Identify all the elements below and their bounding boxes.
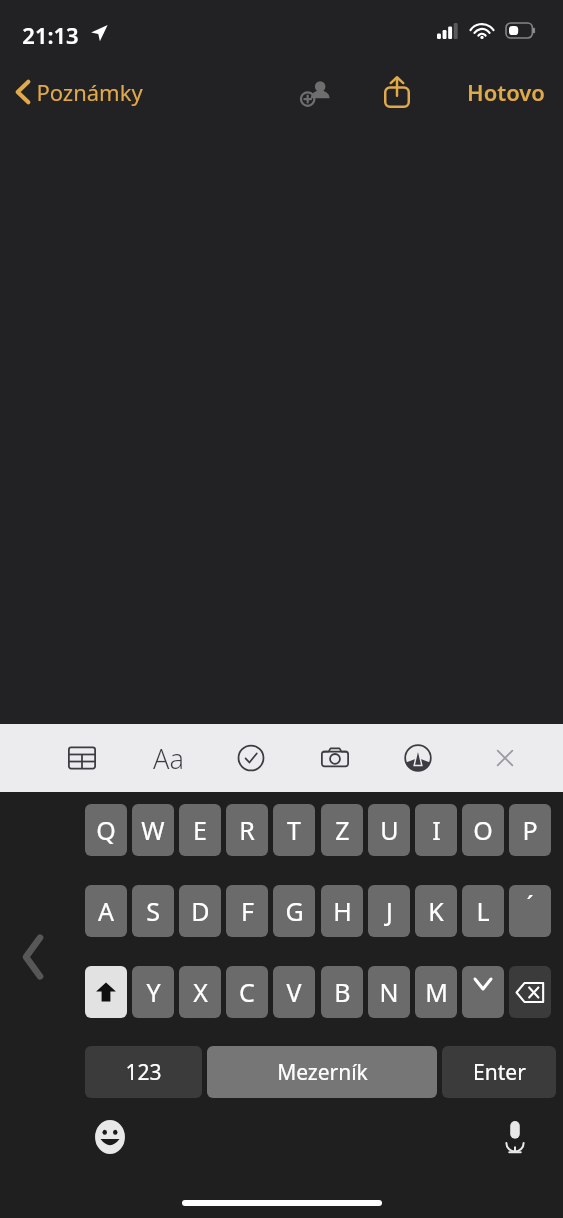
staticText: O (473, 813, 493, 847)
staticText: F (241, 894, 254, 928)
staticText: M (425, 975, 448, 1009)
staticText: K (428, 894, 444, 928)
staticText: I (432, 813, 441, 847)
staticText: D (191, 894, 210, 928)
staticText: W (141, 813, 165, 847)
button[interactable]: Checklist (229, 736, 273, 780)
button[interactable]: U (368, 804, 410, 856)
staticText: Poznámky (36, 77, 143, 107)
button[interactable]: E (179, 804, 221, 856)
button[interactable]: Share (378, 70, 416, 114)
button[interactable]: M (415, 966, 457, 1018)
button[interactable]: T (273, 804, 315, 856)
button[interactable]: D (179, 885, 221, 937)
staticText: G (285, 894, 304, 928)
button[interactable]: A (85, 885, 127, 937)
button[interactable]: Add people (294, 70, 338, 114)
button[interactable]: L (462, 885, 504, 937)
button[interactable]: V (273, 966, 315, 1018)
button[interactable]: Hotovo (461, 71, 551, 113)
button[interactable]: Backspace (509, 966, 551, 1018)
button[interactable]: W (132, 804, 174, 856)
button[interactable]: I (415, 804, 457, 856)
button[interactable]: C (226, 966, 268, 1018)
button[interactable]: Emoji (88, 1115, 132, 1159)
staticText: B (334, 975, 351, 1009)
button[interactable]: Mezerník (207, 1046, 437, 1098)
button[interactable]: Format (142, 736, 194, 780)
staticText: ´ (526, 888, 534, 922)
button[interactable]: Shift (85, 966, 127, 1018)
button[interactable]: Y (132, 966, 174, 1018)
staticText: R (239, 813, 255, 847)
staticText: V (286, 975, 302, 1009)
staticText: E (193, 813, 207, 847)
staticText: J (386, 894, 393, 928)
button[interactable]: 123 (85, 1046, 202, 1098)
button[interactable]: H (321, 885, 363, 937)
button[interactable]: O (462, 804, 504, 856)
button[interactable]: Q (85, 804, 127, 856)
button[interactable]: Enter (442, 1046, 556, 1098)
button[interactable]: N (368, 966, 410, 1018)
button[interactable]: R (226, 804, 268, 856)
button[interactable]: Dictation (493, 1115, 537, 1159)
staticText: N (379, 975, 399, 1009)
button[interactable]: B (321, 966, 363, 1018)
staticText: Z (335, 813, 350, 847)
staticText: Enter (473, 1058, 526, 1087)
staticText: L (476, 894, 490, 928)
button[interactable] (462, 966, 504, 1018)
button[interactable]: F (226, 885, 268, 937)
staticText: U (380, 813, 399, 847)
button[interactable]: Close keyboard (483, 736, 527, 780)
button[interactable]: P (509, 804, 551, 856)
staticText: S (146, 894, 160, 928)
staticText: Aa (153, 740, 184, 777)
staticText: Hotovo (467, 77, 545, 107)
button[interactable]: G (273, 885, 315, 937)
button[interactable]: Z (321, 804, 363, 856)
staticText: P (522, 813, 538, 847)
button[interactable]: Markup (396, 736, 440, 780)
staticText: Y (146, 975, 161, 1009)
button[interactable]: J (368, 885, 410, 937)
staticText: T (287, 813, 301, 847)
staticText: Mezerník (277, 1058, 368, 1087)
button[interactable]: X (179, 966, 221, 1018)
staticText: H (333, 894, 352, 928)
button[interactable]: S (132, 885, 174, 937)
button[interactable]: ´ (509, 885, 551, 937)
staticText: 21:13 (22, 20, 79, 50)
staticText: 123 (125, 1058, 162, 1087)
staticText: X (193, 975, 208, 1009)
staticText: C (239, 975, 255, 1009)
button[interactable]: K (415, 885, 457, 937)
button[interactable]: Poznámky (12, 71, 147, 113)
staticText: A (98, 894, 114, 928)
button[interactable]: Camera (313, 736, 357, 780)
button[interactable]: Table (60, 736, 104, 780)
staticText: Q (96, 813, 116, 847)
